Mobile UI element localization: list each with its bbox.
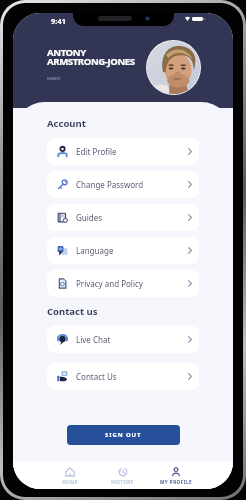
button[interactable]: Live Chat: [47, 326, 199, 353]
staticText: Contact Us: [76, 371, 117, 382]
staticText: Edit Profile: [76, 146, 117, 157]
staticText: MEMBER: [47, 77, 61, 81]
button[interactable]: Change Password: [47, 171, 199, 198]
button[interactable]: Edit Profile: [47, 138, 199, 165]
staticText: Contact us: [47, 305, 98, 318]
staticText: ANTONY ARMSTRONG-JONES: [47, 46, 135, 68]
button[interactable]: Privacy and Policy: [47, 270, 199, 297]
button[interactable]: SIGN OUT: [67, 425, 180, 445]
button[interactable]: HOME: [44, 464, 96, 488]
button[interactable]: Language: [47, 237, 199, 264]
staticText: Guides: [76, 212, 103, 223]
staticText: HISTORY: [111, 479, 134, 485]
staticText: Live Chat: [76, 334, 111, 345]
staticText: Account: [47, 117, 86, 130]
staticText: Change Password: [76, 179, 144, 190]
staticText: SIGN OUT: [105, 431, 142, 439]
staticText: MY PROFILE: [160, 479, 192, 485]
button[interactable]: MY PROFILE: [149, 464, 202, 488]
staticText: HOME: [62, 479, 78, 485]
staticText: Language: [76, 245, 114, 256]
button[interactable]: HISTORY: [96, 464, 149, 488]
staticText: Privacy and Policy: [76, 278, 143, 289]
staticText: 9:41: [51, 16, 67, 26]
button[interactable]: Contact Us: [47, 363, 199, 390]
button[interactable]: Guides: [47, 204, 199, 231]
